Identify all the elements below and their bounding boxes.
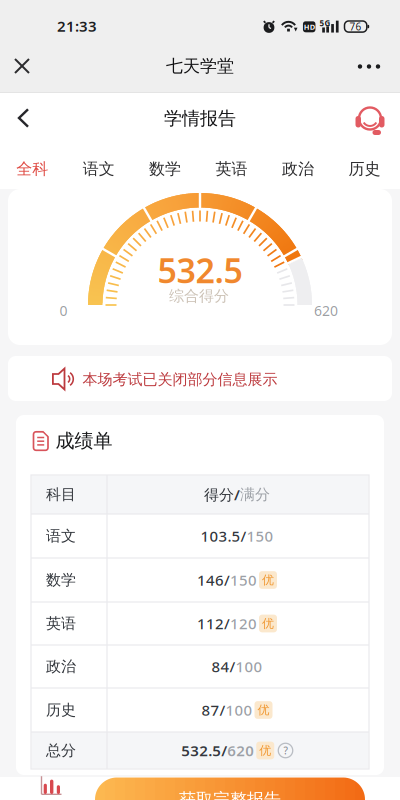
staticText: 优 <box>262 573 274 587</box>
staticText: 5G <box>319 18 330 28</box>
staticText: 英语 <box>216 159 248 179</box>
button[interactable]: 英语 <box>202 151 262 187</box>
button[interactable]: 政治 <box>268 151 328 187</box>
staticText: 87/ <box>201 700 225 720</box>
button[interactable]: 本场考试已关闭部分信息展示 <box>8 356 392 401</box>
staticText: 优 <box>259 743 271 758</box>
button[interactable]: Score chart <box>40 775 62 795</box>
staticText: 120 <box>230 613 257 633</box>
staticText: 优 <box>262 616 274 631</box>
button[interactable]: Customer service <box>351 102 389 139</box>
staticText: 数学 <box>46 571 76 589</box>
staticText: 103.5/ <box>200 526 246 546</box>
staticText: 总分 <box>46 741 76 760</box>
button[interactable]: Close <box>8 52 36 80</box>
staticText: 综合得分 <box>169 287 229 305</box>
staticText: 数学 <box>149 159 181 179</box>
staticText: 84/ <box>211 656 235 676</box>
button[interactable]: 获取完整报告 <box>95 777 365 800</box>
button[interactable]: 数学 <box>135 151 195 187</box>
staticText: 历史 <box>348 159 380 179</box>
staticText: 英语 <box>46 614 76 633</box>
staticText: 学情报告 <box>164 107 236 129</box>
button[interactable]: Help <box>274 743 293 758</box>
staticText: 620 <box>227 740 254 760</box>
staticText: 150 <box>246 526 273 546</box>
staticText: 150 <box>230 570 257 590</box>
staticText: 532.5 <box>157 247 242 293</box>
staticText: 七天学堂 <box>166 56 234 76</box>
staticText: 历史 <box>46 701 76 719</box>
staticText: 620 <box>314 301 338 320</box>
staticText: 100 <box>225 700 252 720</box>
button[interactable]: 语文 <box>69 151 129 187</box>
staticText: 146/ <box>197 570 230 590</box>
staticText: 76 <box>350 20 362 33</box>
staticText: 政治 <box>282 159 314 179</box>
staticText: 语文 <box>46 527 76 545</box>
staticText: 本场考试已关闭部分信息展示 <box>82 370 277 389</box>
staticText: 全科 <box>16 159 48 179</box>
button[interactable]: Back <box>10 100 37 136</box>
staticText: 0 <box>59 301 67 320</box>
staticText: 政治 <box>46 657 76 676</box>
staticText: 科目 <box>46 485 76 504</box>
staticText: 语文 <box>83 159 115 179</box>
button[interactable]: 全科 <box>2 151 62 187</box>
staticText: 获取完整报告 <box>179 789 281 800</box>
button[interactable]: 历史 <box>334 151 394 187</box>
staticText: HD <box>304 22 315 32</box>
button[interactable]: More <box>353 54 385 79</box>
staticText: 21:33 <box>57 16 97 36</box>
staticText: 100 <box>235 656 262 676</box>
staticText: ? <box>283 744 287 757</box>
staticText: 112/ <box>197 613 230 633</box>
staticText: 优 <box>257 703 269 717</box>
staticText: 满分 <box>240 485 270 504</box>
staticText: 532.5/ <box>181 740 227 760</box>
staticText: 得分/ <box>204 484 240 504</box>
staticText: 成绩单 <box>55 429 112 453</box>
